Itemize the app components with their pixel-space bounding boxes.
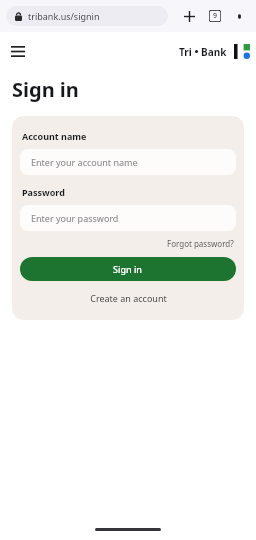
staticText: Enter your password bbox=[31, 212, 119, 224]
button[interactable]: Menu bbox=[5, 38, 31, 64]
staticText: Sign in bbox=[12, 76, 79, 103]
button[interactable]: Tri bbox=[179, 44, 250, 59]
staticText: tribank.us/signin bbox=[28, 10, 100, 22]
staticText: Enter your account name bbox=[31, 156, 138, 168]
staticText: Account name bbox=[22, 130, 87, 142]
button[interactable]: Sign in bbox=[20, 257, 236, 281]
staticText: Sign in bbox=[113, 263, 143, 275]
button[interactable]: Enter your password bbox=[20, 205, 236, 231]
staticText: 9 bbox=[213, 11, 218, 21]
staticText: Tri bbox=[179, 45, 192, 59]
button[interactable]: More options bbox=[228, 5, 250, 27]
button[interactable]: Tabs: 9 bbox=[204, 5, 226, 27]
staticText: Bank bbox=[201, 45, 227, 59]
button[interactable]: Enter your account name bbox=[20, 149, 236, 175]
button[interactable]: New tab bbox=[178, 5, 200, 27]
staticText: Password bbox=[22, 186, 65, 198]
button[interactable]: Forgot password? bbox=[165, 237, 236, 250]
button[interactable]: Create an account bbox=[86, 290, 171, 306]
button[interactable]: tribank.us/signin bbox=[6, 6, 168, 26]
